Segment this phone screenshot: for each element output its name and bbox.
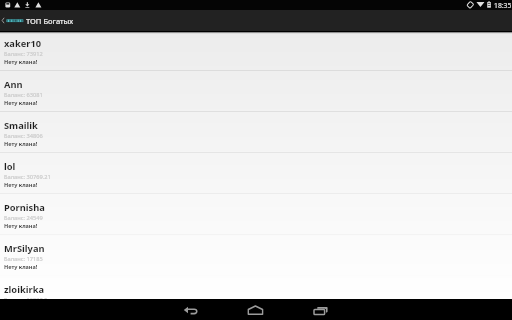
staticText: Баланс: 17185: [4, 255, 43, 263]
staticText: Нету клана!: [4, 222, 38, 229]
button[interactable]: Ann: [0, 71, 512, 112]
staticText: Баланс: 63081: [4, 91, 43, 99]
button[interactable]: Home: [238, 299, 274, 320]
button[interactable]: Pornisha: [0, 194, 512, 235]
staticText: Нету клана!: [4, 99, 38, 106]
button[interactable]: Smailik: [0, 112, 512, 153]
staticText: xaker10: [4, 37, 42, 50]
staticText: lol: [4, 160, 16, 173]
staticText: Smailik: [4, 119, 38, 132]
staticText: Баланс: 16023.5: [4, 296, 48, 304]
staticText: Нету клана!: [4, 140, 38, 147]
button[interactable]: xaker10: [0, 30, 512, 71]
staticText: Баланс: 24549: [4, 214, 43, 222]
staticText: ТОП Богатых: [26, 16, 74, 26]
button[interactable]: lol: [0, 153, 512, 194]
button[interactable]: Navigate up: [0, 10, 25, 31]
staticText: Баланс: 34806: [4, 132, 43, 140]
staticText: Баланс: 73912: [4, 50, 43, 58]
staticText: Нету клана!: [4, 263, 38, 270]
button[interactable]: zloikirka: [0, 276, 512, 317]
staticText: zloikirka: [4, 283, 44, 296]
staticText: Баланс: 30769.21: [4, 173, 51, 181]
staticText: 18:35: [494, 1, 512, 10]
button[interactable]: Recent apps: [304, 299, 338, 320]
button[interactable]: MrSilyan: [0, 235, 512, 276]
staticText: Ann: [4, 78, 23, 91]
button[interactable]: Back: [170, 299, 212, 320]
staticText: Pornisha: [4, 201, 45, 214]
staticText: Нету клана!: [4, 58, 38, 65]
staticText: Нету клана!: [4, 181, 38, 188]
staticText: MrSilyan: [4, 242, 45, 255]
